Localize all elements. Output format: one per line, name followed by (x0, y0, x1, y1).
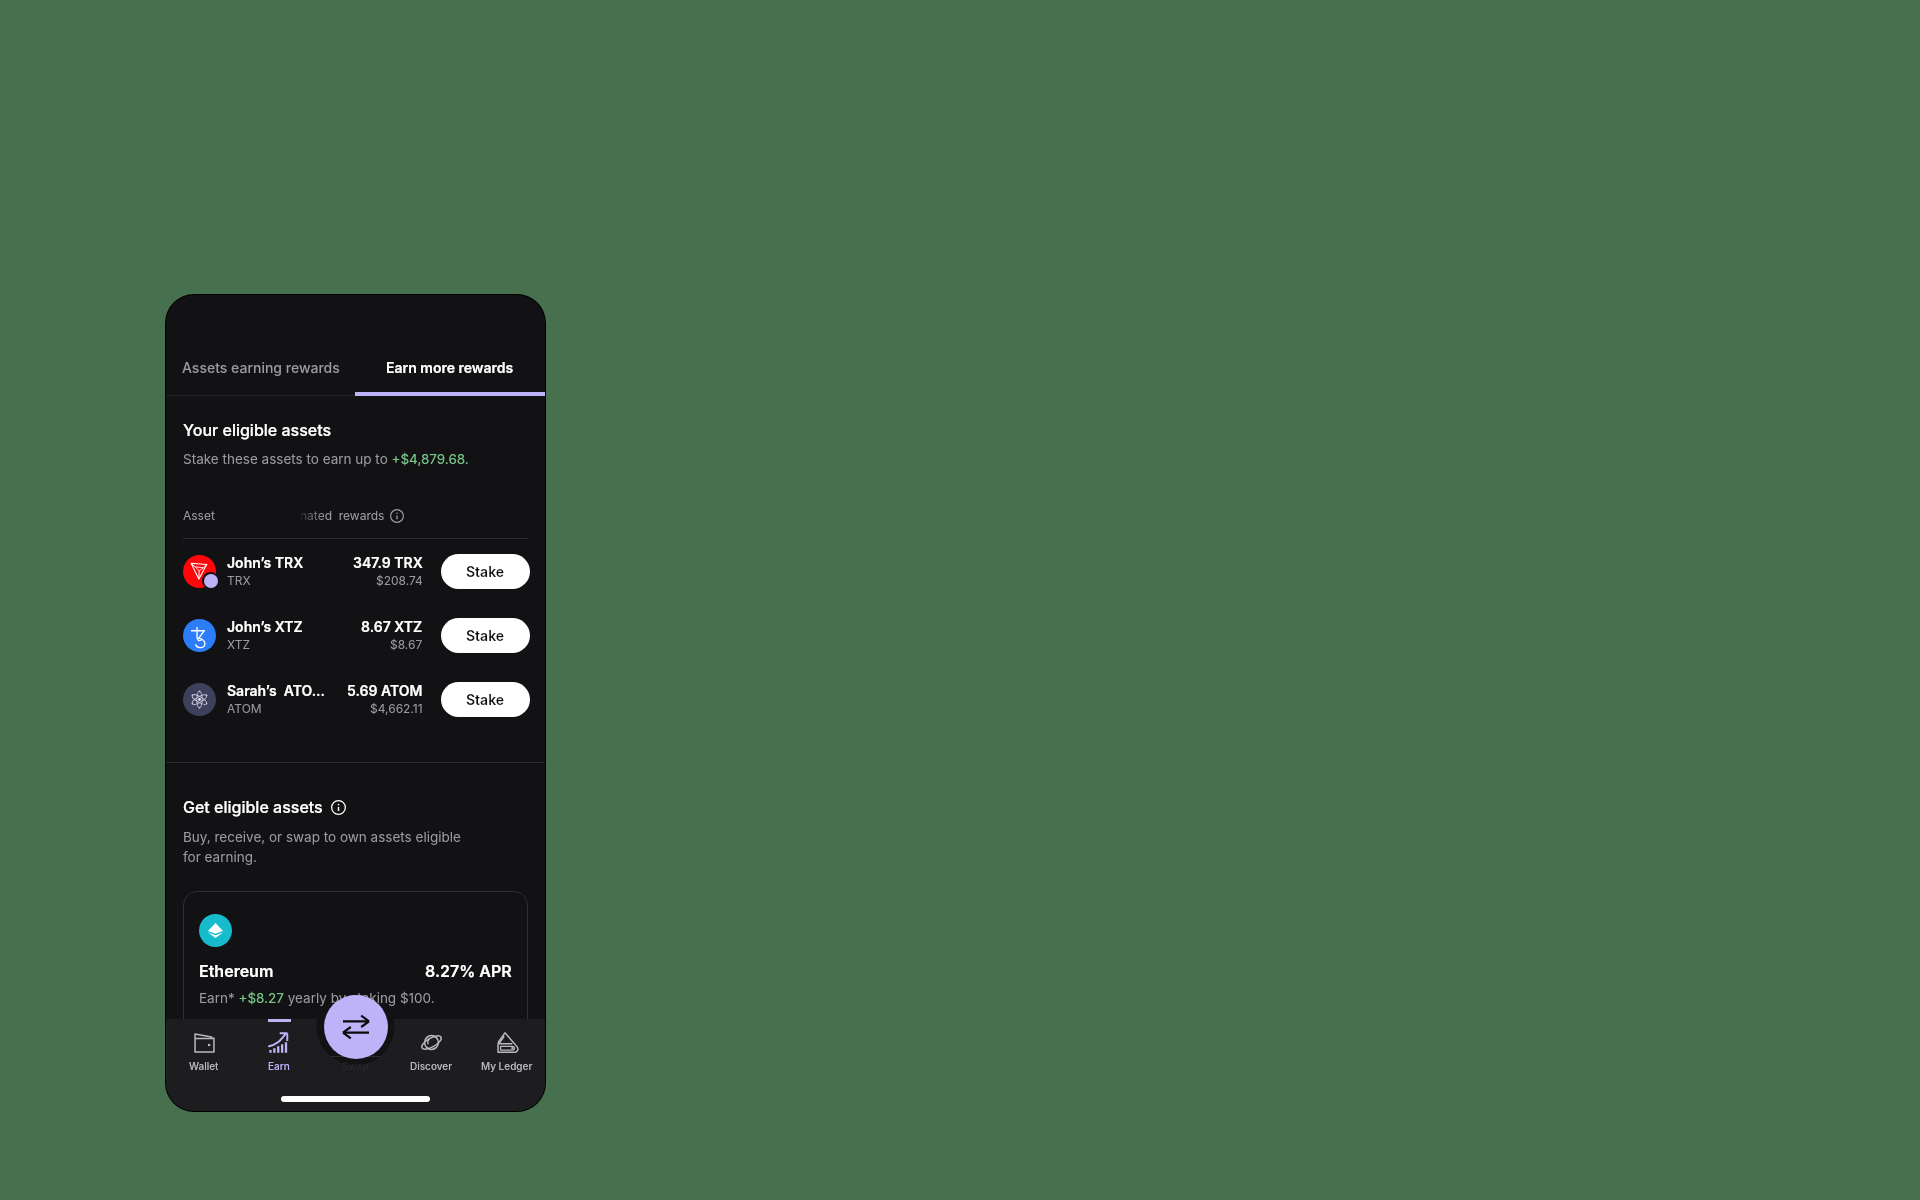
staticText: Earn* +$8.27 yearly by staking $100. (199, 990, 435, 1006)
staticText: 8.27% APR (425, 961, 512, 981)
button[interactable]: Swap (324, 995, 388, 1059)
staticText: $4,662.11 (370, 701, 423, 716)
staticText: Earn (268, 1060, 290, 1072)
staticText: Buy, receive, or swap to own assets elig… (183, 826, 461, 866)
staticText: TRX (227, 573, 251, 588)
staticText: 5.69 ATOM (347, 682, 423, 699)
staticText: 8.67 XTZ (361, 618, 423, 635)
button[interactable]: Stake (441, 682, 530, 717)
button[interactable]: John’s XTZ (183, 603, 528, 667)
staticText: ATOM (227, 701, 262, 716)
staticText: Stake (466, 627, 505, 644)
staticText: Your eligible assets (183, 420, 332, 440)
button[interactable]: Stake (441, 618, 530, 653)
staticText: My Ledger (481, 1060, 533, 1072)
staticText: Stake (466, 563, 505, 580)
button[interactable]: Ethereum (183, 891, 528, 1057)
staticText: Get eligible assets (183, 797, 323, 817)
staticText: Stake (466, 691, 505, 708)
staticText: 347.9 TRX (353, 554, 423, 571)
button[interactable]: John’s TRX (183, 539, 528, 603)
staticText: Swap (342, 1060, 369, 1072)
button[interactable]: Discover (393, 1019, 469, 1111)
staticText: Earn more rewards (386, 359, 514, 376)
staticText: John’s XTZ (227, 618, 303, 635)
staticText: $208.74 (376, 573, 423, 588)
staticText: XTZ (227, 637, 251, 652)
button[interactable]: Stake (441, 554, 530, 589)
staticText: Ethereum (199, 961, 274, 981)
staticText: Wallet (189, 1060, 219, 1072)
staticText: $8.67 (390, 637, 423, 652)
button[interactable]: Sarah’s ATO... (183, 667, 528, 731)
staticText: John’s TRX (227, 554, 304, 571)
button[interactable]: Wallet (166, 1019, 241, 1111)
staticText: nated rewards (300, 508, 385, 523)
staticText: Sarah’s ATO... (227, 682, 326, 699)
staticText: Discover (410, 1060, 453, 1072)
button[interactable]: Earn (241, 1019, 317, 1111)
button[interactable]: Earn more rewards (355, 357, 545, 377)
staticText: Stake these assets to earn up to +$4,879… (183, 451, 469, 467)
staticText: Assets earning rewards (182, 359, 340, 376)
staticText: Asset (183, 508, 215, 523)
button[interactable]: My Ledger (469, 1019, 545, 1111)
button[interactable]: Swap (317, 1019, 393, 1111)
button[interactable]: Assets earning rewards (166, 357, 355, 377)
